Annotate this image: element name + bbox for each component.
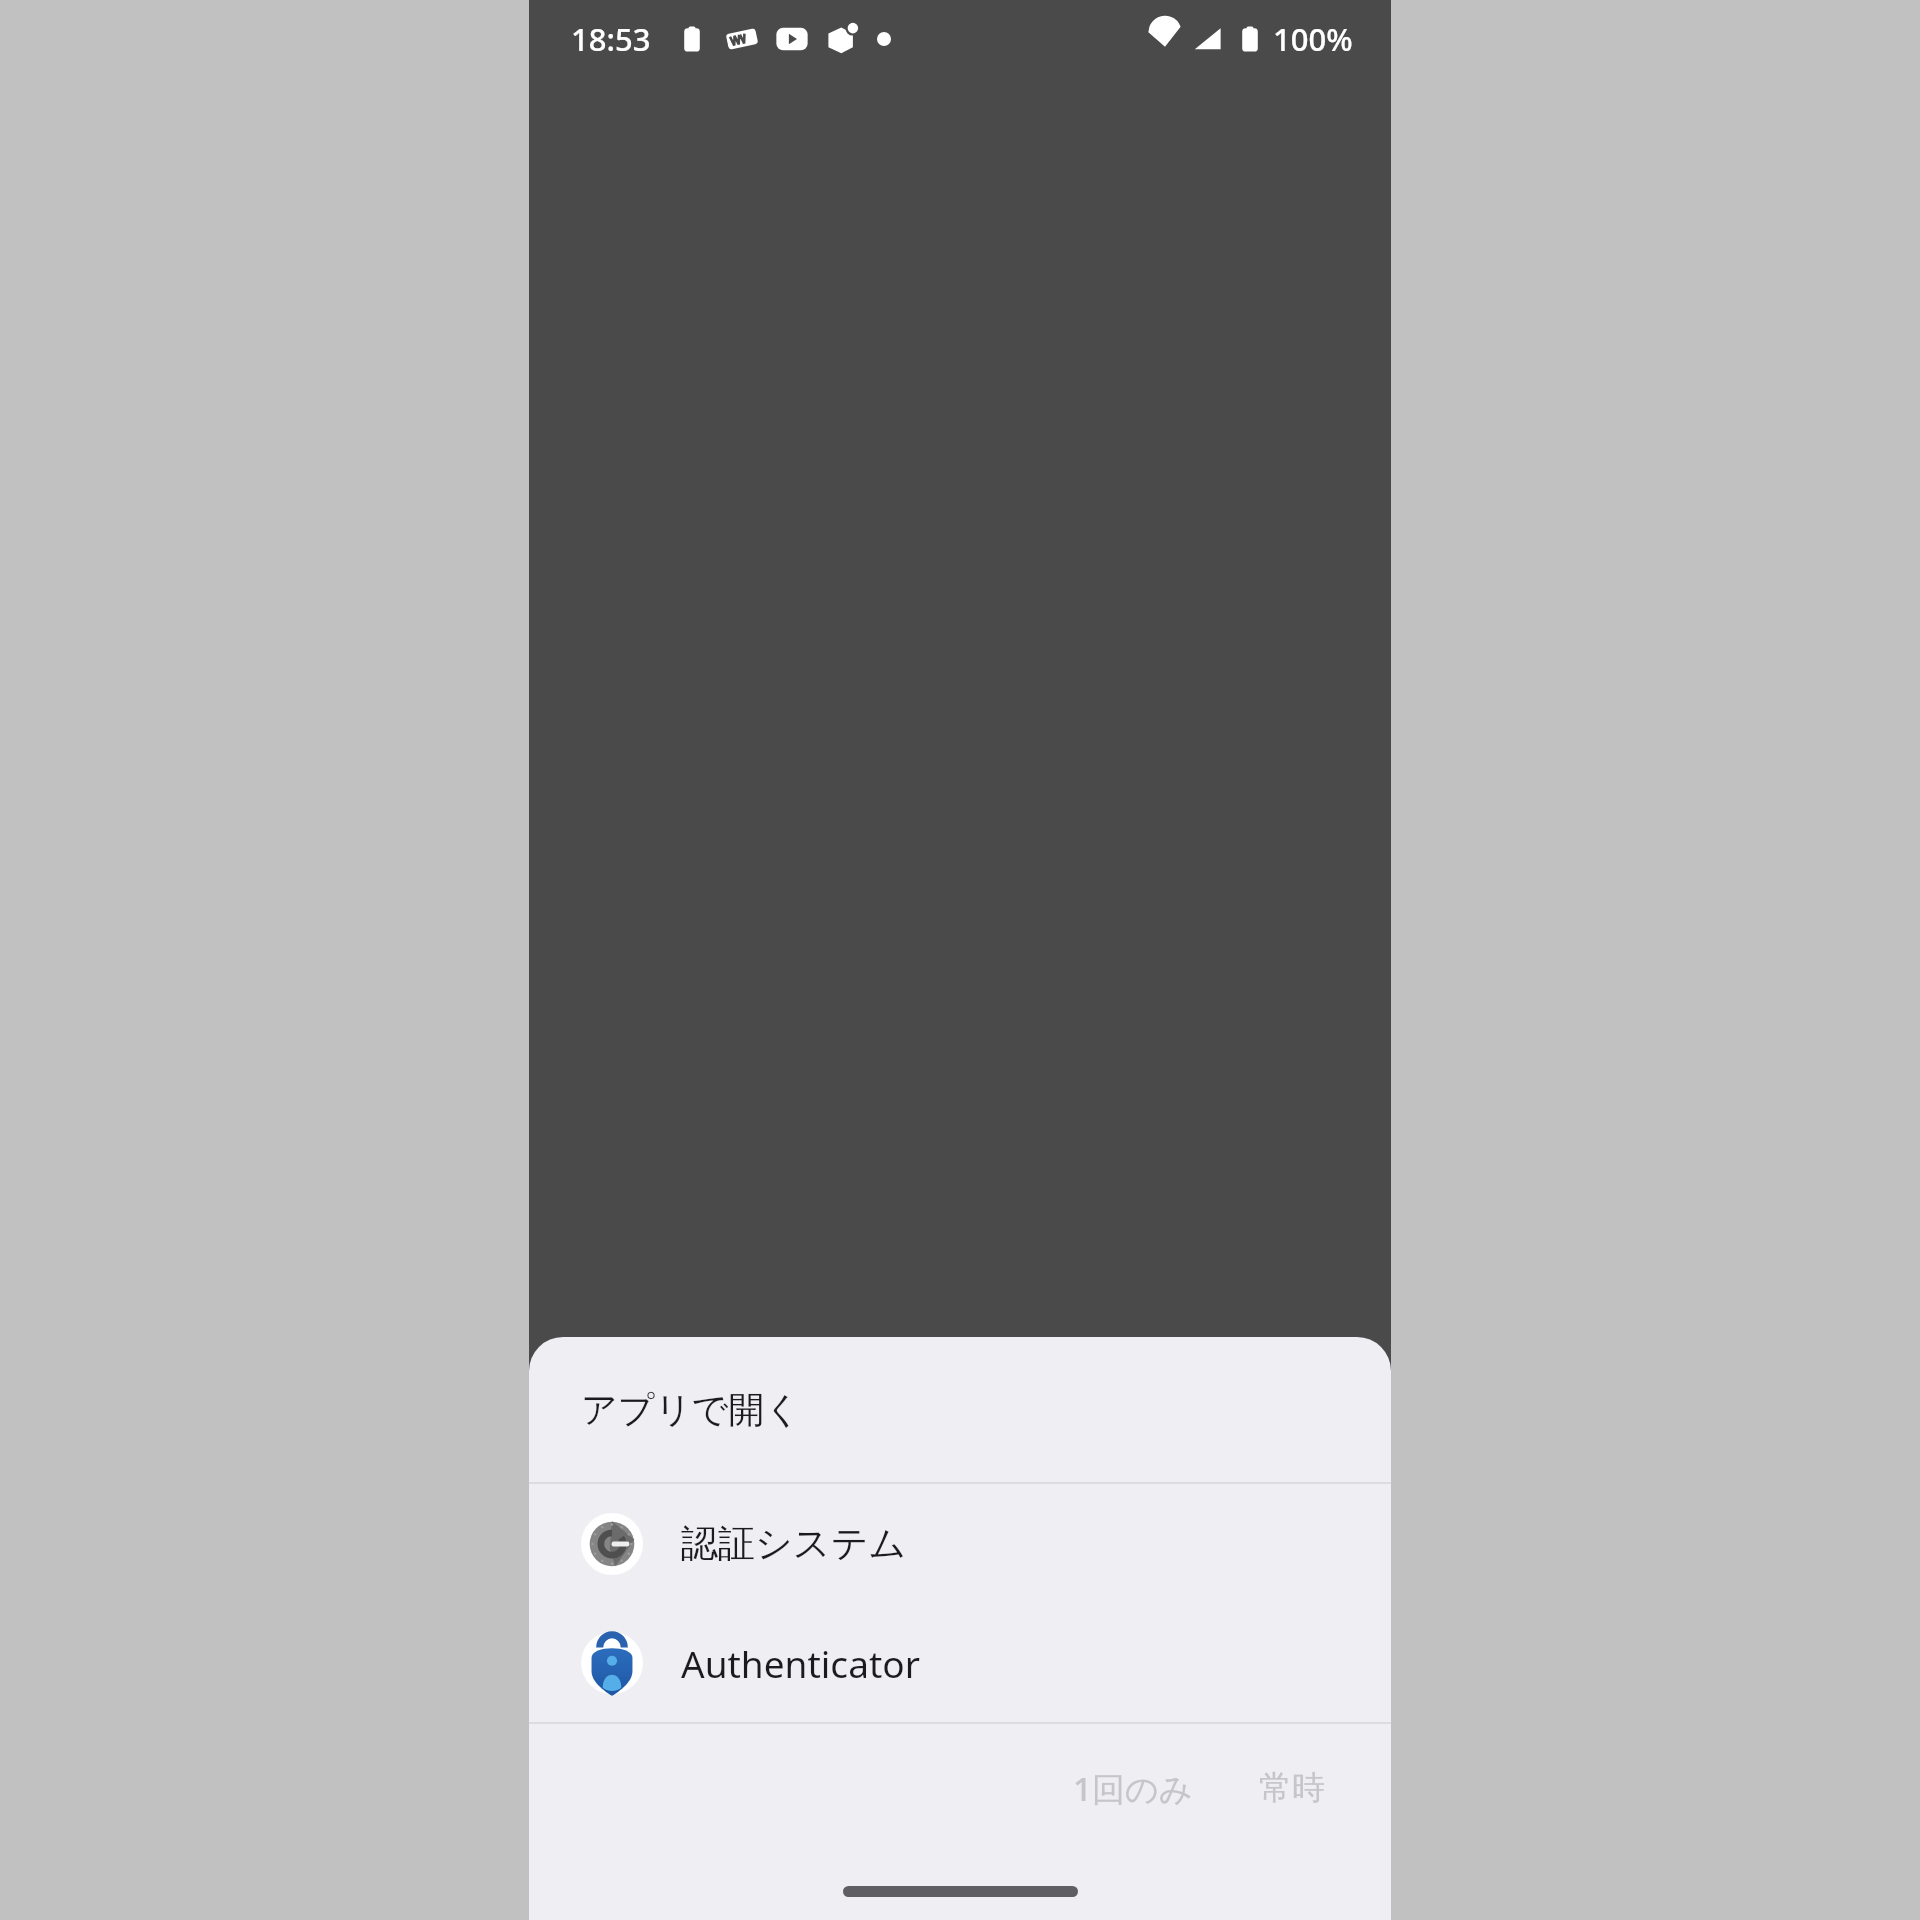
staticText: 100% (1273, 18, 1353, 60)
staticText: 1回のみ (1073, 1766, 1193, 1811)
staticText: 認証システム (681, 1520, 907, 1567)
button[interactable]: 常時 (1233, 1751, 1351, 1825)
other: 認証システム (581, 1513, 643, 1575)
staticText: アプリで開く (581, 1387, 802, 1432)
other: Authenticator (581, 1632, 643, 1694)
staticText: Authenticator (681, 1638, 920, 1688)
staticText: 18:53 (571, 18, 651, 60)
button[interactable]: 認証システム (529, 1484, 1391, 1603)
button[interactable]: 1回のみ (1047, 1750, 1219, 1827)
button[interactable]: Authenticator (529, 1603, 1391, 1722)
staticText: 常時 (1259, 1767, 1325, 1809)
